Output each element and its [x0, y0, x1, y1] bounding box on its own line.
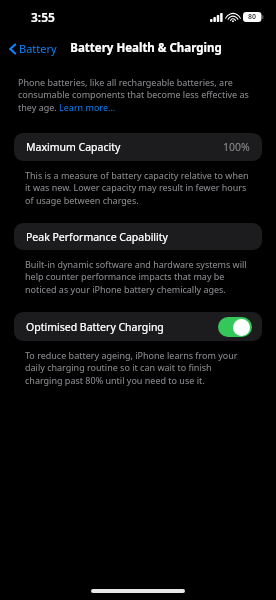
staticText: This is a measure of battery capacity re…	[25, 169, 251, 207]
staticText: To reduce battery ageing, iPhone learns …	[25, 349, 251, 387]
button[interactable]: Phone batteries, like all rechargeable b…	[18, 76, 258, 114]
staticText: Peak Performance Capability	[26, 230, 168, 244]
staticText: Optimised Battery Charging	[26, 320, 164, 334]
button[interactable]: Optimised Battery Charging	[14, 312, 262, 341]
button[interactable]: Optimised Battery Charging toggle	[218, 317, 252, 337]
staticText: Built-in dynamic software and hardware s…	[25, 258, 251, 296]
button[interactable]: Maximum Capacity	[14, 133, 262, 161]
staticText: Battery	[19, 41, 57, 56]
staticText: Maximum Capacity	[26, 140, 121, 154]
button[interactable]: Battery	[0, 38, 61, 59]
staticText: 80	[248, 12, 257, 22]
staticText: Battery Health & Charging	[70, 40, 222, 56]
staticText: 3:55	[31, 9, 55, 25]
staticText: 100%	[223, 140, 250, 154]
button[interactable]: Peak Performance Capability	[14, 223, 262, 250]
